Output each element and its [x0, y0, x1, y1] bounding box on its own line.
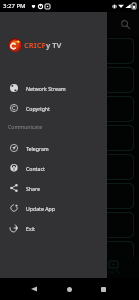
button[interactable]: Telegram	[0, 138, 107, 158]
button[interactable]	[6, 184, 133, 208]
staticText: Telegram	[26, 145, 49, 152]
button[interactable]	[6, 242, 133, 266]
staticText: Exit	[26, 225, 35, 232]
staticText: Copyright	[26, 105, 50, 112]
button[interactable]: Home	[61, 281, 77, 297]
button[interactable]	[6, 97, 133, 121]
button[interactable]: Contact	[0, 158, 107, 178]
button[interactable]: Share	[0, 178, 107, 198]
staticText: Live TV	[106, 269, 121, 275]
button[interactable]: Exit	[0, 218, 107, 238]
button[interactable]	[6, 68, 133, 92]
button[interactable]	[6, 39, 133, 63]
staticText: CRICF	[24, 40, 46, 50]
button[interactable]	[6, 155, 133, 179]
staticText: y TV	[46, 40, 62, 50]
staticText: Share	[26, 185, 40, 192]
button[interactable]	[6, 213, 133, 237]
staticText: Contact	[26, 165, 45, 172]
staticText: Communicate	[8, 123, 43, 130]
button[interactable]: Update App	[0, 198, 107, 218]
button[interactable]: Copyright	[0, 98, 107, 118]
staticText: Update App	[26, 205, 55, 212]
button[interactable]: Network Stream	[0, 78, 107, 98]
button[interactable]: Back	[26, 281, 42, 297]
button[interactable]: Search	[117, 16, 133, 32]
button[interactable]: Live TV	[98, 261, 129, 275]
staticText: 3:27 PM	[3, 2, 26, 10]
staticText: Network Stream	[26, 85, 66, 92]
button[interactable]: Recent apps	[95, 281, 111, 297]
button[interactable]	[6, 126, 133, 150]
